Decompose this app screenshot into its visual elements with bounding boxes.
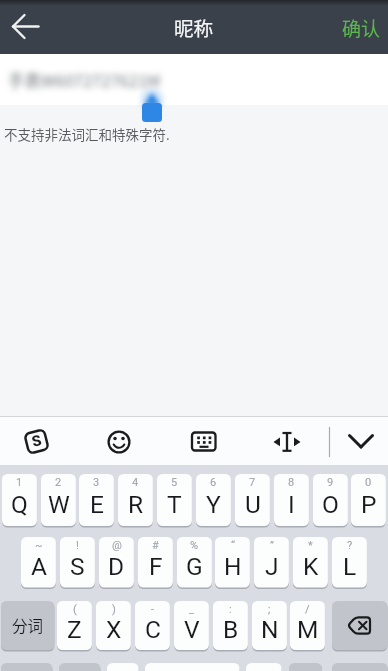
staticText: G bbox=[186, 552, 203, 581]
staticText: 5 bbox=[171, 476, 178, 489]
staticText: N bbox=[261, 615, 279, 644]
staticText: J bbox=[265, 552, 279, 581]
staticText: 7 bbox=[249, 476, 256, 489]
staticText: P bbox=[361, 490, 377, 519]
staticText: / bbox=[305, 603, 310, 616]
staticText: - bbox=[151, 603, 155, 616]
staticText: ~ bbox=[35, 539, 43, 552]
staticText: ( bbox=[73, 603, 77, 616]
staticText: 确认 bbox=[342, 14, 381, 42]
staticText: A bbox=[31, 552, 47, 581]
staticText: 0 bbox=[365, 476, 372, 489]
staticText: R bbox=[128, 490, 144, 519]
staticText: : bbox=[229, 603, 232, 616]
staticText: 手表W6072727621M bbox=[8, 68, 161, 92]
staticText: 分词 bbox=[12, 614, 44, 636]
staticText: @ bbox=[112, 539, 122, 552]
staticText: O bbox=[322, 490, 339, 519]
staticText: ! bbox=[76, 539, 79, 552]
staticText: 2 bbox=[55, 476, 62, 489]
staticText: 4 bbox=[132, 476, 139, 489]
staticText: V bbox=[184, 615, 200, 644]
staticText: # bbox=[152, 539, 159, 552]
staticText: E bbox=[90, 490, 104, 519]
staticText: F bbox=[149, 552, 163, 581]
staticText: _ bbox=[189, 603, 194, 616]
staticText: T bbox=[167, 490, 182, 519]
staticText: B bbox=[223, 615, 239, 644]
staticText: ” bbox=[270, 539, 274, 552]
staticText: C bbox=[145, 615, 161, 644]
staticText: ? bbox=[347, 539, 353, 552]
staticText: H bbox=[224, 552, 242, 581]
staticText: 6 bbox=[210, 476, 217, 489]
staticText: Z bbox=[67, 615, 82, 644]
staticText: 3 bbox=[93, 476, 100, 489]
staticText: Q bbox=[11, 490, 28, 519]
staticText: U bbox=[245, 490, 261, 519]
staticText: L bbox=[343, 552, 357, 581]
staticText: 不支持非法词汇和特殊字符. bbox=[4, 124, 170, 144]
staticText: 昵称 bbox=[174, 13, 214, 41]
staticText: 9 bbox=[327, 476, 334, 489]
staticText: S bbox=[70, 552, 85, 581]
staticText: 8 bbox=[288, 476, 295, 489]
staticText: K bbox=[303, 552, 319, 581]
staticText: Y bbox=[206, 490, 221, 519]
staticText: * bbox=[308, 539, 313, 552]
staticText: ) bbox=[112, 603, 116, 616]
staticText: “ bbox=[231, 539, 235, 552]
staticText: S bbox=[30, 431, 44, 451]
staticText: M bbox=[297, 615, 319, 644]
staticText: ; bbox=[268, 603, 271, 616]
staticText: W bbox=[48, 490, 70, 519]
staticText: D bbox=[108, 552, 125, 581]
staticText: I bbox=[288, 490, 295, 519]
staticText: % bbox=[190, 539, 199, 552]
staticText: 1 bbox=[16, 476, 23, 489]
staticText: X bbox=[106, 615, 122, 644]
